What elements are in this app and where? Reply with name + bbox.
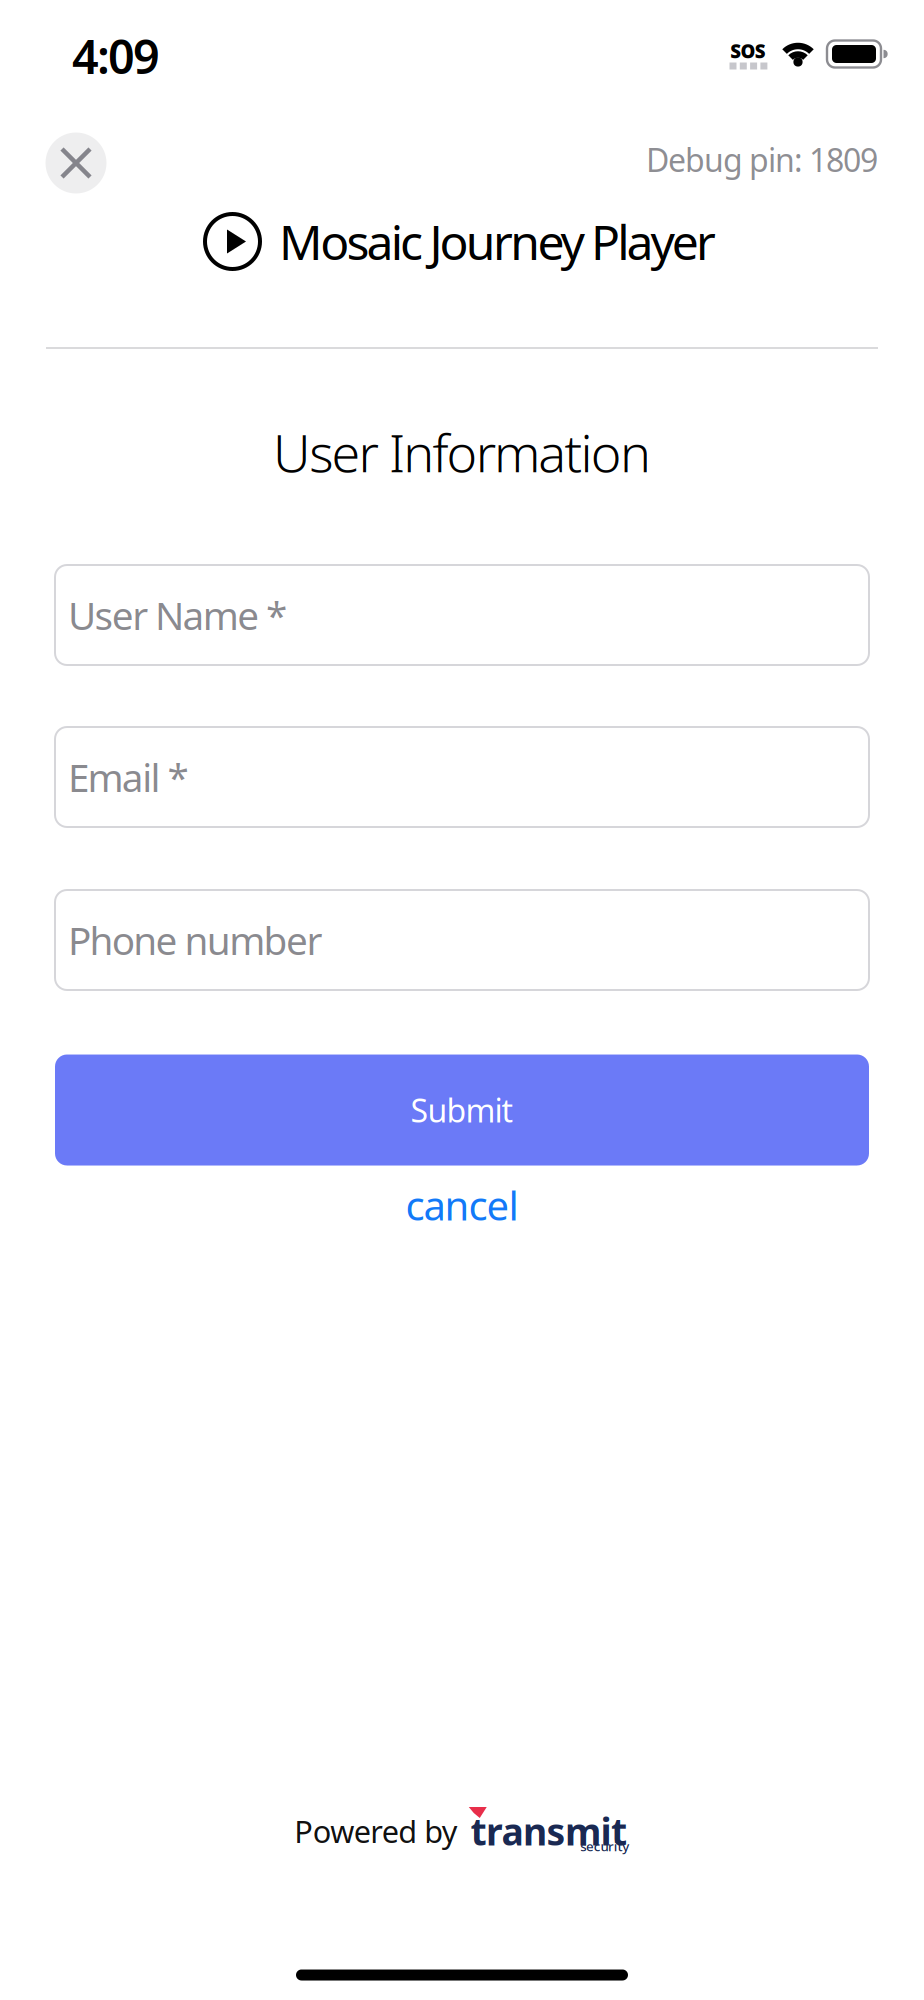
button[interactable]: cancel	[405, 1178, 518, 1231]
staticText: 4:09	[72, 25, 160, 87]
staticText: security	[580, 1837, 629, 1855]
button[interactable]: Submit	[55, 1054, 869, 1165]
button[interactable]: User Name *	[55, 565, 869, 665]
button[interactable]: Phone number	[55, 890, 869, 990]
staticText: User Information	[273, 417, 651, 487]
staticText: Phone number	[68, 914, 322, 966]
button[interactable]: Email *	[55, 727, 869, 827]
staticText: transmit	[470, 1806, 627, 1856]
staticText: Powered by	[294, 1811, 458, 1851]
staticText: Mosaic Journey Player	[279, 210, 716, 273]
staticText: User Name *	[68, 589, 287, 641]
staticText: Email *	[68, 751, 188, 803]
staticText: Submit	[410, 1089, 513, 1131]
staticText: Debug pin: 1809	[646, 138, 878, 181]
staticText: SOS	[730, 39, 766, 63]
button[interactable]	[45, 132, 106, 193]
staticText: cancel	[405, 1178, 518, 1231]
